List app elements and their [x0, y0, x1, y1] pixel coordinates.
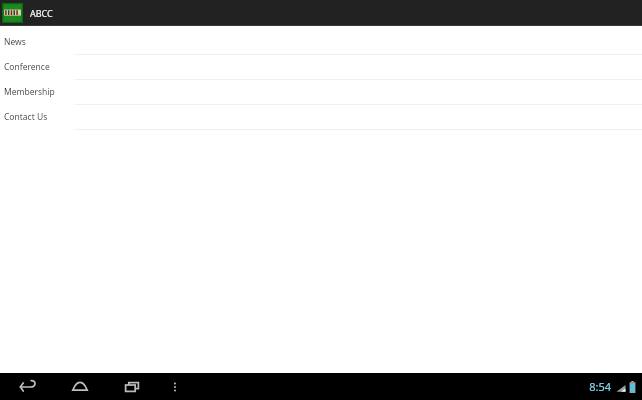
- button[interactable]: Home: [60, 373, 100, 400]
- button[interactable]: Back: [8, 373, 48, 400]
- button[interactable]: Membership: [0, 80, 642, 105]
- button[interactable]: News: [0, 30, 642, 55]
- button[interactable]: Conference: [0, 55, 642, 80]
- staticText: Conference: [4, 61, 50, 73]
- staticText: 8:54: [589, 379, 611, 394]
- staticText: ABCC: [30, 7, 53, 19]
- staticText: Contact Us: [4, 111, 48, 123]
- button[interactable]: Contact Us: [0, 105, 642, 130]
- button[interactable]: ABCC: [0, 0, 642, 25]
- staticText: Membership: [4, 86, 55, 98]
- staticText: News: [4, 36, 26, 48]
- button[interactable]: More options: [162, 373, 188, 400]
- button[interactable]: Recent apps: [112, 373, 152, 400]
